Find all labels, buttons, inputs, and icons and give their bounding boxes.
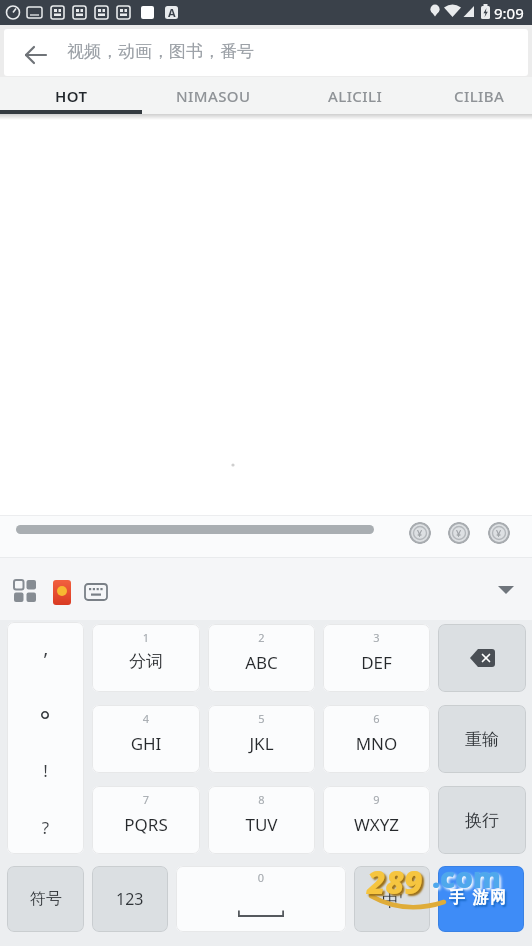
staticText: CILIBA (454, 86, 505, 106)
staticText: 分词 (92, 651, 200, 672)
button[interactable]: 0 (176, 866, 346, 932)
staticText: 6 (323, 711, 430, 726)
button[interactable]: 视频，动画，图书，番号 (4, 29, 528, 76)
staticText: 4 (92, 711, 200, 726)
button[interactable]: 6 (323, 705, 430, 773)
staticText: 3 (323, 630, 430, 645)
staticText: A (168, 5, 176, 20)
staticText: ¥ (456, 527, 462, 539)
staticText: HOT (55, 86, 88, 106)
staticText: 手 游网 (449, 886, 508, 908)
staticText: 8 (208, 792, 315, 807)
staticText: ’ (7, 646, 84, 673)
button[interactable]: 重输 (438, 705, 526, 773)
button[interactable]: ¥ (448, 522, 470, 544)
button[interactable]: CILIBA (426, 77, 532, 114)
button[interactable]: 2 (208, 624, 315, 692)
button[interactable] (438, 624, 526, 692)
staticText: 9 (323, 792, 430, 807)
button[interactable]: ¥ (488, 522, 510, 544)
button[interactable]: 123 (92, 866, 168, 932)
button[interactable] (497, 586, 517, 598)
staticText: 123 (116, 888, 144, 910)
staticText: ! (7, 759, 84, 782)
staticText: 0 (176, 870, 346, 885)
staticText: DEF (323, 651, 430, 674)
staticText: MNO (323, 732, 430, 755)
button[interactable]: 中' (354, 866, 430, 932)
button[interactable]: ALICILI (284, 77, 426, 114)
button[interactable]: 1 (92, 624, 200, 692)
button[interactable]: 3 (323, 624, 430, 692)
staticText: 视频，动画，图书，番号 (67, 41, 254, 62)
button[interactable] (85, 584, 107, 601)
staticText: 1 (92, 630, 200, 645)
button[interactable] (16, 525, 374, 534)
button[interactable]: 4 (92, 705, 200, 773)
button[interactable] (26, 46, 47, 64)
button[interactable]: HOT (0, 77, 142, 114)
button[interactable]: 9 (323, 786, 430, 854)
staticText: 重输 (465, 729, 499, 750)
button[interactable]: 8 (208, 786, 315, 854)
staticText: 符号 (30, 889, 62, 909)
staticText: 9:09 (494, 3, 524, 23)
staticText: GHI (92, 732, 200, 755)
button[interactable] (438, 866, 524, 932)
staticText: ALICILI (328, 86, 383, 106)
staticText: ¥ (417, 527, 423, 539)
button[interactable] (14, 580, 37, 603)
staticText: 2 (208, 630, 315, 645)
staticText: 5 (208, 711, 315, 726)
staticText: 换行 (465, 810, 499, 831)
button[interactable]: ’ (7, 622, 84, 854)
staticText: 7 (92, 792, 200, 807)
button[interactable]: 7 (92, 786, 200, 854)
staticText: ABC (208, 651, 315, 674)
button[interactable]: 符号 (7, 866, 84, 932)
button[interactable]: ¥ (409, 522, 431, 544)
staticText: 289 (367, 860, 423, 904)
staticText: 中' (382, 888, 403, 911)
button[interactable]: NIMASOU (142, 77, 284, 114)
staticText: .com (432, 858, 502, 896)
staticText: PQRS (92, 813, 200, 836)
staticText: ? (7, 816, 84, 839)
staticText: NIMASOU (176, 86, 251, 106)
staticText: ¥ (496, 527, 502, 539)
button[interactable]: 换行 (438, 786, 526, 854)
staticText: TUV (208, 813, 315, 836)
button[interactable]: 5 (208, 705, 315, 773)
button[interactable] (53, 580, 71, 605)
staticText: WXYZ (323, 813, 430, 836)
staticText: JKL (208, 732, 315, 755)
